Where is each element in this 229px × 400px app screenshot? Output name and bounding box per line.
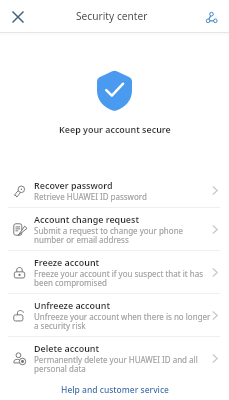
staticText: Unfreeze account — [34, 299, 110, 311]
staticText: Retrieve HUAWEI ID password — [34, 191, 147, 202]
button[interactable]: Freeze account — [0, 251, 229, 293]
staticText: Permanently delete your HUAWEI ID and al… — [34, 354, 198, 374]
staticText: Help and customer service — [61, 384, 169, 396]
button[interactable]: Delete account — [0, 337, 229, 379]
staticText: Delete account — [34, 342, 100, 354]
staticText: Submit a request to change your phone nu… — [34, 225, 184, 245]
staticText: Freeze account — [34, 256, 100, 268]
staticText: Account change request — [34, 213, 140, 225]
button[interactable]: Share — [195, 1, 227, 33]
staticText: Recover password — [34, 179, 113, 191]
staticText: Security center — [76, 9, 148, 23]
button[interactable]: Account change request — [0, 208, 229, 250]
staticText: Unfreeze your account when there is no l… — [34, 311, 211, 331]
staticText: Keep your account secure — [59, 123, 171, 135]
button[interactable]: Recover password — [0, 174, 229, 207]
button[interactable]: Help and customer service — [0, 384, 229, 400]
staticText: Freeze your account if you suspect that … — [34, 268, 203, 288]
button[interactable]: Unfreeze account — [0, 294, 229, 336]
button[interactable]: Close — [1, 1, 35, 33]
